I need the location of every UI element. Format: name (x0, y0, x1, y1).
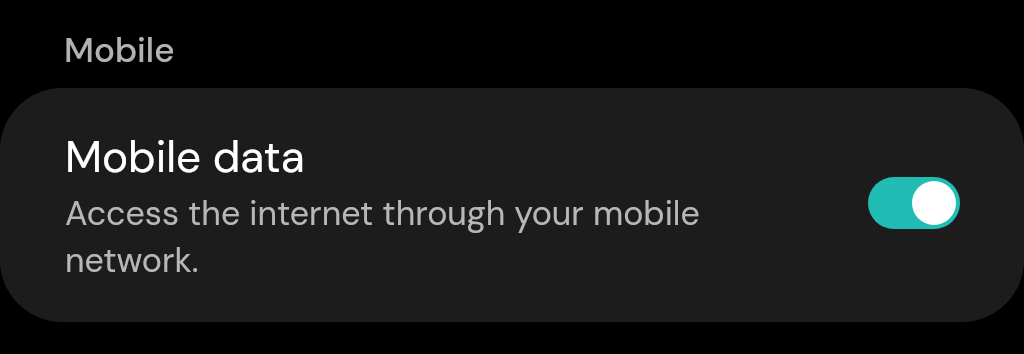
staticText: Mobile data (65, 128, 305, 185)
button[interactable]: Mobile data, on (868, 177, 960, 229)
button[interactable]: Mobile data (0, 88, 1024, 322)
staticText: Access the internet through your mobile … (65, 191, 700, 282)
button[interactable]: Mobile (64, 27, 175, 73)
staticText: Mobile (64, 27, 175, 73)
